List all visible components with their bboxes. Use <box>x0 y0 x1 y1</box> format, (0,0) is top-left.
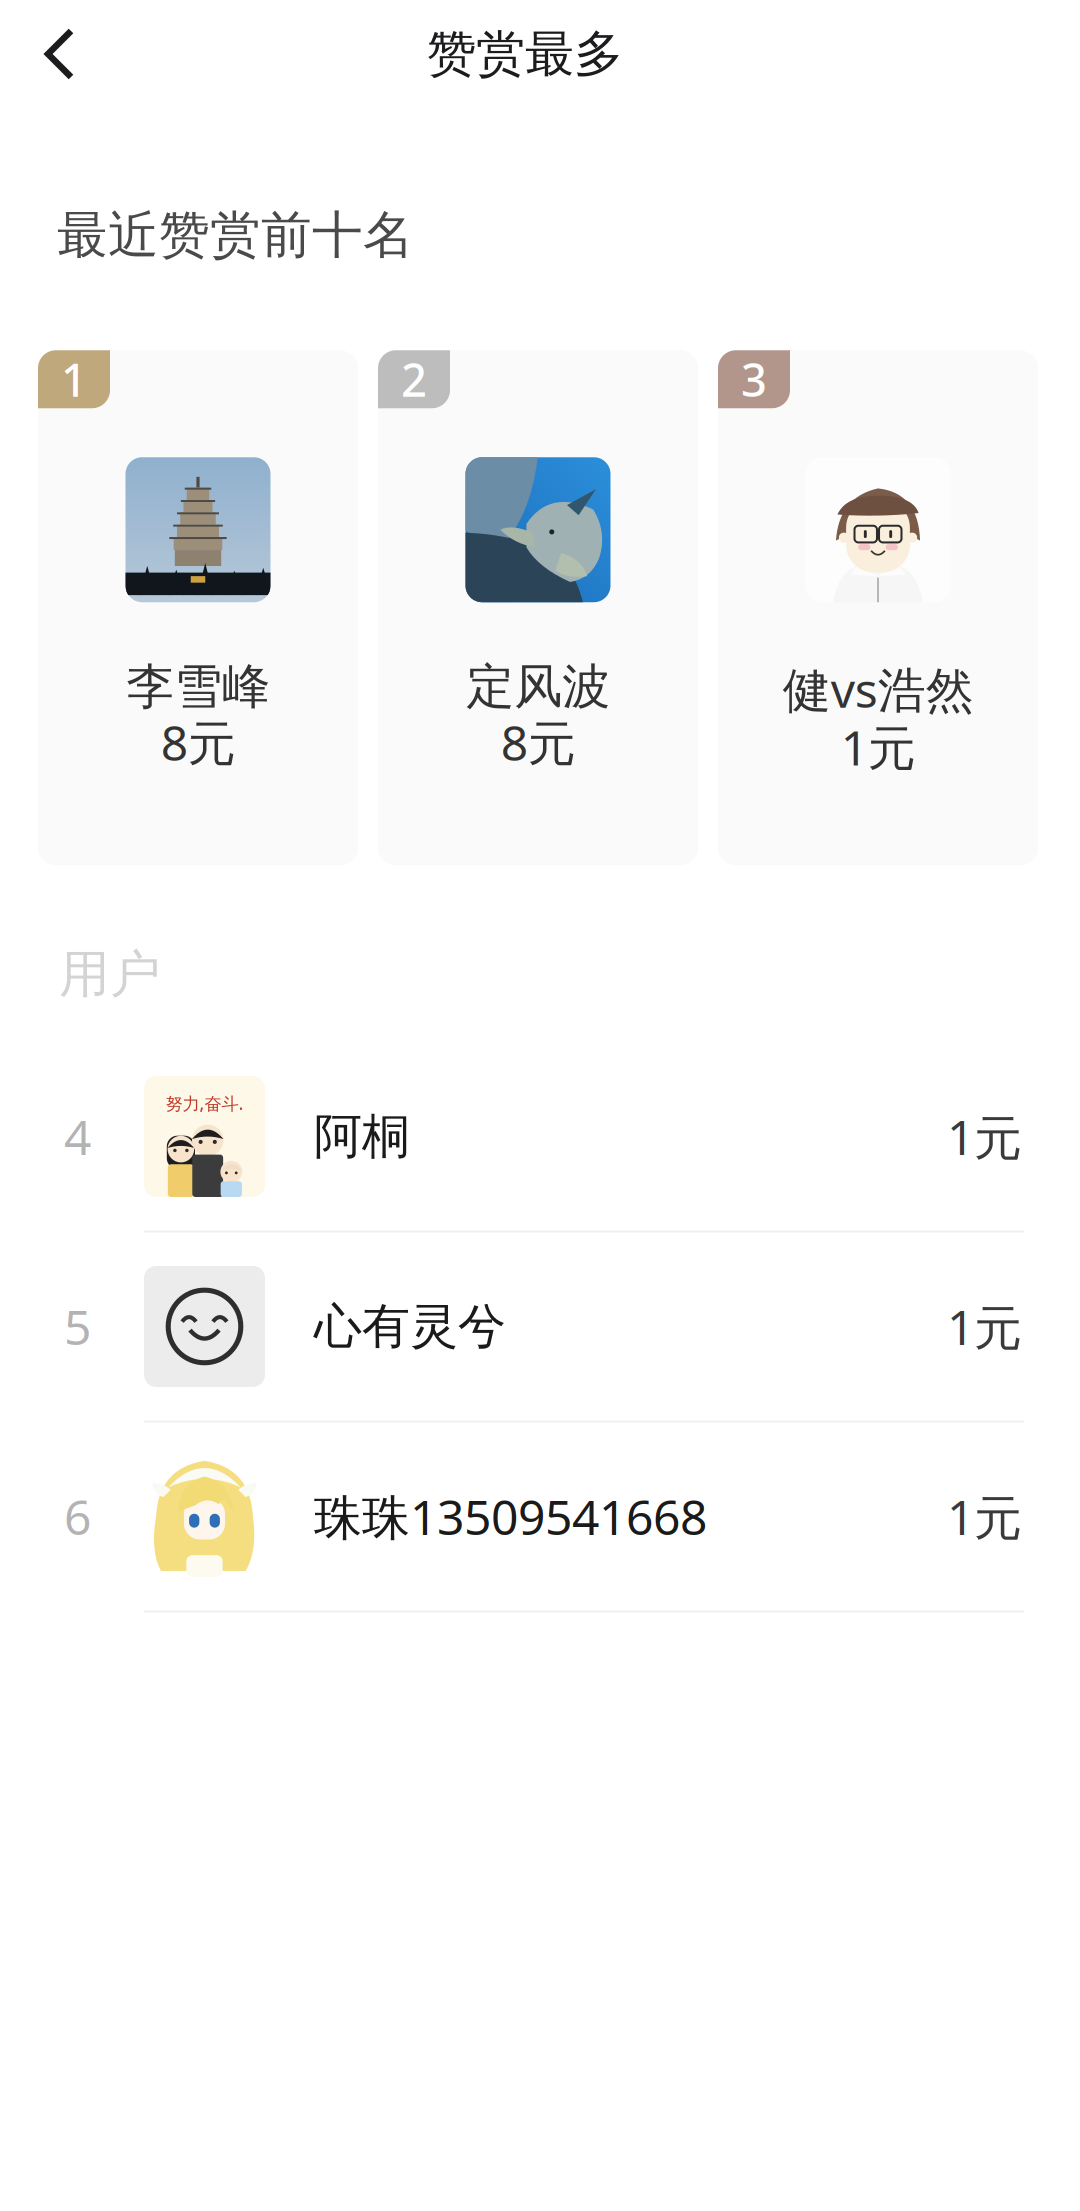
staticText: 3 <box>741 349 767 409</box>
button[interactable]: 返回 <box>0 3 111 105</box>
staticText: 李雪峰 8元 <box>126 657 270 774</box>
button[interactable]: 5 <box>0 1232 1080 1422</box>
staticText: 1元 <box>947 1105 1022 1168</box>
staticText: 2 <box>401 349 427 409</box>
button[interactable]: 李雪峰 8元 <box>38 350 358 865</box>
button[interactable]: 6 <box>0 1422 1080 1612</box>
staticText: 最近赞赏前十名 <box>57 204 414 266</box>
staticText: 5 <box>64 1295 91 1358</box>
staticText: 珠珠13509541668 <box>314 1485 707 1548</box>
button[interactable]: 健vs浩然 1元 <box>718 350 1038 865</box>
staticText: 努力,奋斗. <box>165 1092 243 1115</box>
staticText: 1 <box>61 349 87 409</box>
staticText: 6 <box>64 1485 91 1548</box>
staticText: 4 <box>64 1105 91 1168</box>
staticText: 定风波 8元 <box>466 657 610 774</box>
staticText: 1元 <box>947 1485 1022 1548</box>
staticText: 健vs浩然 1元 <box>782 657 973 779</box>
button[interactable]: 4 <box>0 1042 1080 1232</box>
staticText: 1元 <box>947 1295 1022 1358</box>
staticText: 阿桐 <box>314 1107 410 1166</box>
button[interactable]: 定风波 8元 <box>378 350 698 865</box>
staticText: 心有灵兮 <box>314 1297 506 1356</box>
staticText: 用户 <box>59 943 161 1005</box>
staticText: 赞赏最多 <box>427 24 623 84</box>
